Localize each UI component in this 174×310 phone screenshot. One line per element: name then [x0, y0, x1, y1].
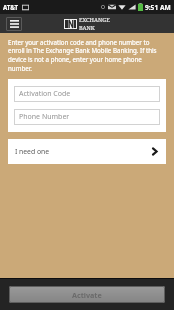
button[interactable]: Activate: [9, 286, 165, 303]
staticText: EXCHANGE: [79, 16, 110, 24]
button[interactable]: Menu: [6, 17, 22, 31]
staticText: I need one: [15, 147, 50, 156]
staticText: Enter your activation code and phone num…: [8, 38, 166, 73]
staticText: Activation Code: [19, 89, 71, 99]
staticText: Phone Number: [19, 112, 70, 122]
staticText: 9:51 AM: [145, 3, 171, 12]
staticText: BANK: [79, 24, 95, 32]
button[interactable]: Activation Code: [14, 86, 160, 102]
button[interactable]: I need one: [8, 139, 166, 164]
staticText: AT&T: [3, 3, 19, 11]
button[interactable]: Phone Number: [14, 109, 160, 125]
staticText: Activate: [72, 290, 102, 300]
